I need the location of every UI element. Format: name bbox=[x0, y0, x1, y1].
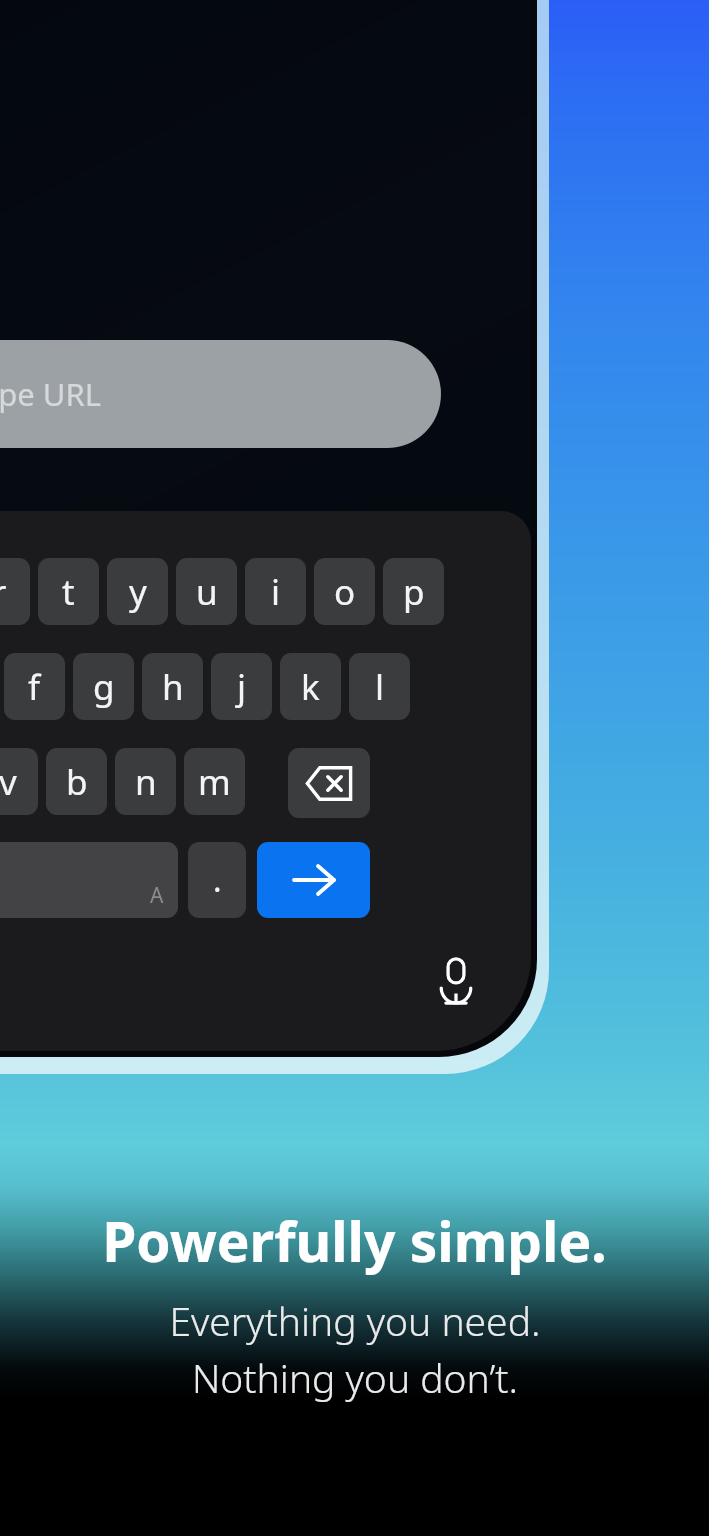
staticText: v bbox=[0, 758, 17, 806]
staticText: y bbox=[129, 568, 147, 616]
staticText: Powerfully simple. bbox=[102, 1203, 607, 1278]
staticText: k bbox=[301, 663, 320, 711]
button[interactable]: i bbox=[245, 558, 306, 625]
button[interactable]: Space bbox=[0, 842, 178, 918]
button[interactable]: . bbox=[188, 842, 246, 918]
staticText: j bbox=[237, 663, 247, 711]
button[interactable]: p bbox=[383, 558, 444, 625]
button[interactable]: u bbox=[176, 558, 237, 625]
button[interactable]: m bbox=[184, 748, 245, 815]
button[interactable]: k bbox=[280, 653, 341, 720]
button[interactable]: o bbox=[314, 558, 375, 625]
staticText: m bbox=[198, 758, 231, 806]
staticText: r bbox=[0, 568, 7, 616]
button[interactable]: t bbox=[38, 558, 99, 625]
button[interactable]: b bbox=[46, 748, 107, 815]
button[interactable]: r bbox=[0, 558, 30, 625]
button[interactable]: j bbox=[211, 653, 272, 720]
button[interactable]: v bbox=[0, 748, 38, 815]
button[interactable]: y bbox=[107, 558, 168, 625]
staticText: n bbox=[135, 758, 157, 806]
staticText: g bbox=[93, 663, 115, 711]
staticText: o bbox=[334, 568, 356, 616]
staticText: p bbox=[403, 568, 425, 616]
staticText: f bbox=[28, 663, 41, 711]
staticText: u bbox=[196, 568, 218, 616]
staticText: . bbox=[213, 858, 222, 902]
staticText: A bbox=[150, 881, 164, 910]
staticText: l bbox=[375, 663, 385, 711]
staticText: i bbox=[271, 568, 281, 616]
staticText: t bbox=[62, 568, 75, 616]
staticText: h bbox=[162, 663, 184, 711]
staticText: Search or Type URL bbox=[0, 373, 102, 415]
staticText: Everything you need. Nothing you don’t. bbox=[169, 1294, 541, 1404]
staticText: b bbox=[66, 758, 88, 806]
button[interactable]: Search or Type URL bbox=[0, 340, 441, 448]
button[interactable]: l bbox=[349, 653, 410, 720]
button[interactable]: Voice input bbox=[428, 954, 484, 1010]
button[interactable]: h bbox=[142, 653, 203, 720]
button[interactable]: Backspace bbox=[288, 748, 370, 818]
button[interactable]: f bbox=[4, 653, 65, 720]
button[interactable]: g bbox=[73, 653, 134, 720]
button[interactable]: n bbox=[115, 748, 176, 815]
button[interactable]: Go bbox=[257, 842, 370, 918]
